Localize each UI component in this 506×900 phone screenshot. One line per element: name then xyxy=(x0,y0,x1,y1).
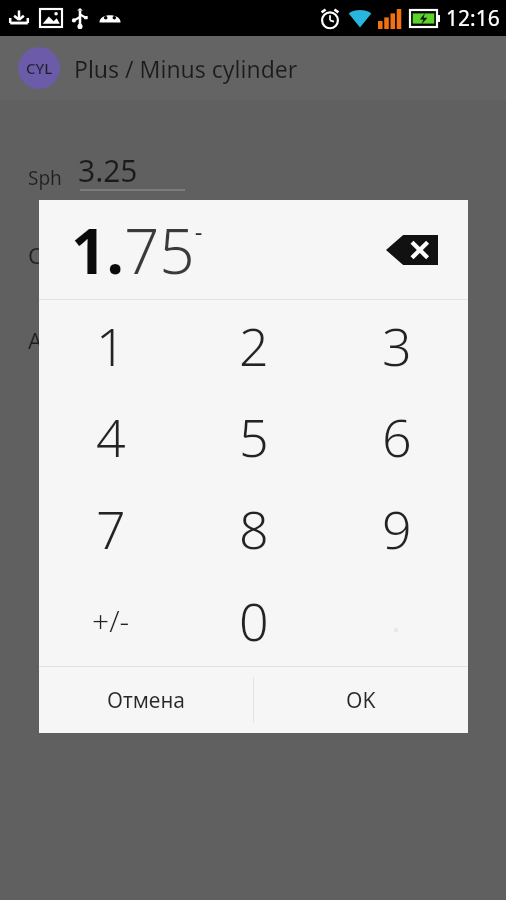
staticText: 5 xyxy=(239,401,269,472)
staticText: 3 xyxy=(382,310,412,381)
staticText: 0 xyxy=(239,585,269,656)
button[interactable]: Отмена xyxy=(39,667,253,733)
button[interactable]: 4 xyxy=(39,391,182,482)
staticText: CYL xyxy=(26,58,53,78)
staticText: 12:16 xyxy=(446,4,500,33)
staticText: 7 xyxy=(96,493,126,564)
staticText: 1 xyxy=(96,310,126,381)
staticText: 4 xyxy=(96,401,126,472)
staticText: 3.25 xyxy=(78,150,138,191)
button[interactable]: 9 xyxy=(325,482,468,574)
staticText: +/- xyxy=(92,600,130,641)
staticText: C xyxy=(28,240,42,270)
staticText: 8 xyxy=(239,493,269,564)
staticText: 1.75- xyxy=(71,208,203,292)
button[interactable]: OK xyxy=(254,667,468,733)
staticText: Plus / Minus cylinder xyxy=(74,53,298,84)
staticText: A xyxy=(28,325,43,355)
staticText: 2 xyxy=(239,310,269,381)
staticText: 6 xyxy=(382,401,412,472)
button[interactable]: +/- xyxy=(39,574,182,666)
button[interactable]: 2 xyxy=(182,300,325,391)
button[interactable]: 5 xyxy=(182,391,325,482)
button[interactable]: 6 xyxy=(325,391,468,482)
staticText: Отмена xyxy=(107,686,186,715)
staticText: OK xyxy=(346,686,376,715)
button[interactable]: Backspace xyxy=(382,227,442,273)
button[interactable]: 0 xyxy=(182,574,325,666)
staticText: Sph xyxy=(28,165,62,191)
button[interactable]: 7 xyxy=(39,482,182,574)
staticText: 9 xyxy=(382,493,412,564)
button[interactable]: 3 xyxy=(325,300,468,391)
button[interactable]: 8 xyxy=(182,482,325,574)
button[interactable]: 1 xyxy=(39,300,182,391)
